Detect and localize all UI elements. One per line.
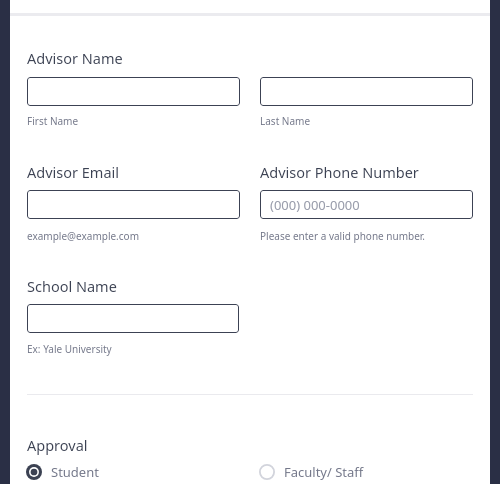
staticText: Faculty/ Staff bbox=[284, 463, 364, 481]
button[interactable]: First Name bbox=[27, 77, 240, 106]
staticText: First Name bbox=[27, 114, 79, 128]
staticText: Student bbox=[51, 463, 99, 481]
button[interactable]: Advisor Phone Number bbox=[260, 190, 473, 219]
button[interactable]: School Name bbox=[27, 304, 239, 333]
button[interactable]: Student bbox=[26, 461, 99, 483]
staticText: Advisor Email bbox=[27, 162, 120, 182]
staticText: Advisor Phone Number bbox=[260, 162, 419, 182]
staticText: Advisor Name bbox=[27, 48, 123, 68]
staticText: example@example.com bbox=[27, 229, 139, 243]
button[interactable]: Last Name bbox=[260, 77, 473, 106]
button[interactable]: Advisor Email bbox=[27, 190, 240, 219]
staticText: (000) 000-0000 bbox=[270, 196, 360, 214]
staticText: School Name bbox=[27, 276, 117, 296]
staticText: Please enter a valid phone number. bbox=[260, 229, 426, 243]
staticText: Approval bbox=[27, 435, 88, 455]
staticText: Last Name bbox=[260, 114, 311, 128]
staticText: Ex: Yale University bbox=[27, 342, 112, 356]
button[interactable]: Faculty/ Staff bbox=[259, 461, 364, 483]
